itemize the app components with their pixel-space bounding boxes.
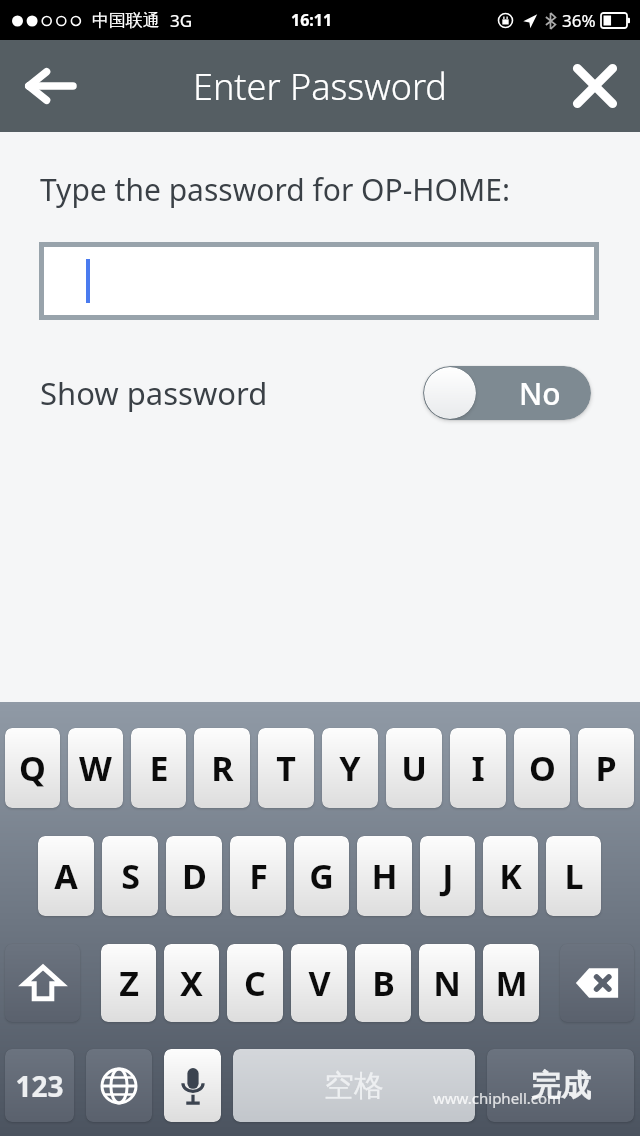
- button[interactable]: M: [483, 944, 539, 1022]
- button[interactable]: L: [546, 836, 601, 916]
- staticText: 完成: [531, 1067, 591, 1105]
- button[interactable]: Backspace: [560, 944, 634, 1022]
- staticText: S: [121, 853, 140, 899]
- button[interactable]: O: [514, 728, 570, 808]
- button[interactable]: S: [102, 836, 158, 916]
- button[interactable]: K: [483, 836, 538, 916]
- button[interactable]: Close: [564, 55, 626, 117]
- staticText: W: [79, 745, 112, 791]
- button[interactable]: F: [230, 836, 286, 916]
- button[interactable]: C: [227, 944, 283, 1022]
- staticText: C: [244, 960, 266, 1006]
- button[interactable]: I: [450, 728, 506, 808]
- staticText: I: [471, 745, 485, 791]
- staticText: M: [495, 960, 528, 1006]
- staticText: www.chiphell.com: [433, 1088, 562, 1108]
- staticText: Q: [19, 745, 46, 791]
- button[interactable]: Z: [101, 944, 156, 1022]
- staticText: R: [211, 745, 234, 791]
- staticText: N: [433, 960, 461, 1006]
- button[interactable]: Show password toggle, off: [423, 366, 591, 420]
- staticText: E: [149, 745, 169, 791]
- staticText: K: [499, 853, 522, 899]
- staticText: No: [519, 373, 561, 414]
- staticText: T: [276, 745, 296, 791]
- staticText: G: [309, 853, 334, 899]
- button[interactable]: R: [194, 728, 250, 808]
- staticText: 空格: [324, 1067, 384, 1105]
- staticText: Enter Password: [193, 62, 447, 111]
- button[interactable]: J: [420, 836, 475, 916]
- button[interactable]: Q: [5, 728, 60, 808]
- staticText: Y: [339, 745, 361, 791]
- button[interactable]: N: [419, 944, 475, 1022]
- button[interactable]: B: [355, 944, 411, 1022]
- staticText: F: [249, 853, 268, 899]
- staticText: Type the password for OP-HOME:: [40, 169, 510, 210]
- staticText: X: [180, 960, 203, 1006]
- button[interactable]: 空格: [233, 1049, 475, 1122]
- button[interactable]: T: [258, 728, 314, 808]
- staticText: Show password: [40, 372, 268, 414]
- staticText: A: [54, 853, 78, 899]
- button[interactable]: [44, 247, 594, 315]
- staticText: Z: [119, 960, 139, 1006]
- button[interactable]: V: [291, 944, 347, 1022]
- button[interactable]: Y: [322, 728, 378, 808]
- button[interactable]: 123: [5, 1049, 74, 1122]
- button[interactable]: W: [68, 728, 123, 808]
- staticText: 3G: [170, 9, 193, 32]
- staticText: L: [564, 853, 584, 899]
- staticText: H: [371, 853, 398, 899]
- staticText: P: [595, 745, 617, 791]
- staticText: V: [308, 960, 331, 1006]
- button[interactable]: Shift: [5, 944, 80, 1022]
- staticText: D: [182, 853, 207, 899]
- button[interactable]: Change keyboard: [86, 1049, 152, 1122]
- button[interactable]: U: [386, 728, 442, 808]
- staticText: J: [442, 853, 454, 899]
- staticText: O: [529, 745, 556, 791]
- staticText: U: [401, 745, 427, 791]
- button[interactable]: E: [131, 728, 186, 808]
- button[interactable]: P: [578, 728, 634, 808]
- button[interactable]: Dictation: [164, 1049, 221, 1122]
- staticText: B: [372, 960, 395, 1006]
- button[interactable]: G: [294, 836, 349, 916]
- button[interactable]: 完成: [487, 1049, 634, 1122]
- button[interactable]: D: [166, 836, 222, 916]
- button[interactable]: X: [164, 944, 219, 1022]
- button[interactable]: Back: [18, 55, 80, 117]
- staticText: 中国联通: [92, 10, 160, 31]
- button[interactable]: A: [38, 836, 94, 916]
- staticText: 123: [15, 1067, 64, 1105]
- button[interactable]: H: [357, 836, 412, 916]
- staticText: 16:11: [291, 9, 333, 31]
- staticText: 36%: [562, 9, 596, 32]
